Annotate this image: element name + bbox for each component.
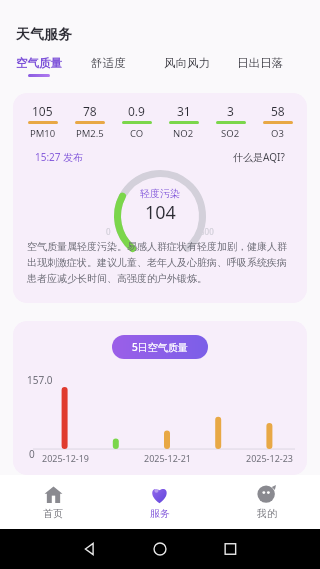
staticText: 我的 — [257, 507, 277, 520]
button[interactable]: 3 — [207, 103, 254, 140]
staticText: 首页 — [43, 507, 63, 520]
button[interactable]: 78 — [66, 103, 113, 140]
staticText: 3 — [227, 103, 234, 119]
staticText: 0.9 — [128, 103, 145, 119]
staticText: 157.0 — [27, 373, 53, 387]
button[interactable]: 空气质量 — [16, 54, 91, 79]
staticText: 空气质量属轻度污染。易感人群症状有轻度加剧，健康人群出现刺激症状。建议儿童、老年… — [27, 240, 293, 285]
other: 服务 — [150, 485, 169, 504]
staticText: 78 — [83, 103, 97, 119]
staticText: 5日空气质量 — [132, 340, 188, 354]
staticText: 2025-12-23 — [246, 452, 293, 464]
staticText: 天气服务 — [16, 26, 72, 44]
button[interactable]: 风向风力 — [164, 54, 237, 72]
staticText: PM2.5 — [76, 127, 104, 140]
button[interactable]: 58 — [254, 103, 301, 140]
staticText: CO — [130, 127, 144, 140]
staticText: 2025-12-21 — [144, 452, 191, 464]
staticText: 2025-12-19 — [42, 452, 89, 464]
staticText: 日出日落 — [237, 56, 283, 70]
staticText: 服务 — [150, 507, 170, 520]
button[interactable]: 什么是AQI? — [233, 150, 285, 164]
staticText: O3 — [271, 127, 284, 140]
staticText: 轻度污染 — [140, 187, 180, 200]
staticText: 31 — [177, 103, 191, 119]
button[interactable]: 105 — [19, 103, 66, 140]
staticText: 舒适度 — [91, 56, 126, 70]
staticText: PM10 — [30, 127, 56, 140]
staticText: 500 — [200, 226, 214, 236]
button[interactable]: 31 — [160, 103, 207, 140]
button[interactable]: 15:27 发布 — [35, 150, 84, 164]
button[interactable]: 首页 — [0, 475, 106, 529]
staticText: 0 — [106, 226, 111, 236]
staticText: 0 — [29, 447, 35, 461]
staticText: NO2 — [173, 127, 194, 140]
button[interactable]: 日出日落 — [237, 54, 310, 72]
staticText: 空气质量 — [16, 56, 62, 70]
button[interactable]: 5日空气质量 — [112, 335, 208, 359]
button[interactable]: 我的 — [213, 475, 320, 529]
button[interactable]: 0.9 — [113, 103, 160, 140]
button[interactable]: 服务 — [106, 475, 213, 529]
button[interactable]: 舒适度 — [91, 54, 164, 72]
other: 我的 — [257, 485, 276, 504]
staticText: 104 — [145, 200, 176, 225]
staticText: 58 — [271, 103, 285, 119]
staticText: 风向风力 — [164, 56, 210, 70]
other: 首页 — [44, 485, 63, 504]
staticText: 105 — [32, 103, 53, 119]
staticText: SO2 — [221, 127, 240, 140]
